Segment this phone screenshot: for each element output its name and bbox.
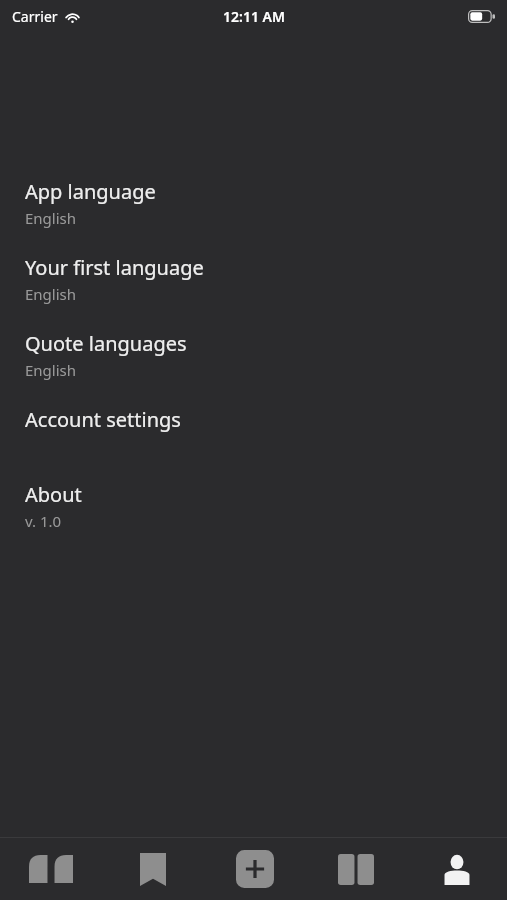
button[interactable]: Quotes (0, 838, 102, 900)
button[interactable]: Add quote (204, 838, 305, 900)
staticText: 12:11 AM (223, 7, 285, 26)
button[interactable]: About (25, 481, 507, 531)
button[interactable]: Account settings (25, 406, 507, 433)
staticText: Carrier (12, 7, 58, 26)
staticText: English (25, 360, 77, 380)
button[interactable]: Bookmarks (102, 838, 204, 900)
staticText: v. 1.0 (25, 511, 62, 531)
button[interactable]: Your first language (25, 254, 507, 304)
staticText: About (25, 481, 82, 508)
staticText: English (25, 284, 77, 304)
button[interactable]: Library (305, 838, 406, 900)
staticText: English (25, 208, 77, 228)
staticText: Quote languages (25, 330, 187, 357)
staticText: Your first language (25, 254, 204, 281)
button[interactable]: Quote languages (25, 330, 507, 380)
button[interactable]: Profile (406, 838, 507, 900)
button[interactable]: App language (25, 178, 507, 228)
staticText: Account settings (25, 406, 181, 433)
staticText: App language (25, 178, 156, 205)
